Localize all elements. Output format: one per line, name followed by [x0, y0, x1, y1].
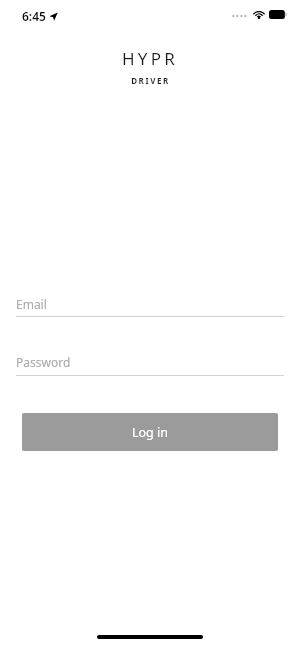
- staticText: DRIVER: [131, 75, 170, 86]
- staticText: Email: [16, 296, 47, 312]
- button[interactable]: Password: [16, 354, 284, 378]
- staticText: HYPR: [122, 47, 178, 70]
- staticText: Log in: [132, 424, 169, 441]
- staticText: Password: [16, 354, 71, 370]
- button[interactable]: Email: [16, 296, 284, 320]
- staticText: 6:45: [22, 8, 46, 24]
- button[interactable]: Log in: [22, 413, 278, 451]
